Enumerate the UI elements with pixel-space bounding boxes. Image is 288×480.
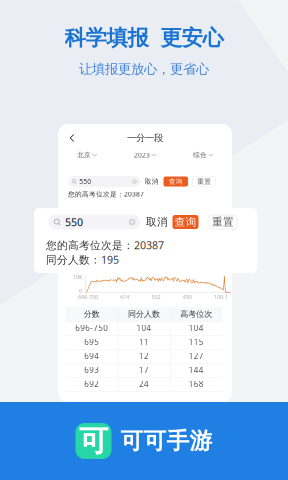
staticText: 北京	[77, 151, 91, 159]
staticText: 695	[84, 337, 99, 347]
staticText: 693	[84, 365, 99, 375]
staticText: 一分一段	[127, 132, 163, 144]
staticText: 2023	[134, 151, 150, 159]
staticText: 450	[183, 293, 192, 301]
staticText: 17	[139, 365, 149, 375]
staticText: 您的高考位次是：20387	[46, 238, 164, 252]
staticText: 24	[139, 379, 149, 389]
button[interactable]: 查询	[172, 215, 198, 229]
staticText: 104	[136, 323, 151, 333]
staticText: 科学填报 更安心	[64, 25, 223, 51]
staticText: 重置	[212, 215, 234, 228]
staticText: 532	[151, 293, 160, 301]
staticText: 0	[79, 287, 82, 295]
staticText: 同分人数：195	[46, 252, 119, 267]
staticText: 取消	[145, 177, 159, 186]
button[interactable]: 综合	[174, 150, 232, 160]
staticText: 让填报更放心，更省心	[79, 61, 209, 77]
staticText: 取消	[146, 215, 168, 228]
staticText: 您的高考位次是：20387	[68, 190, 144, 198]
staticText: 168	[189, 379, 204, 389]
button[interactable]: 重置	[193, 176, 216, 186]
staticText: 重置	[197, 177, 211, 186]
staticText: 614	[120, 293, 129, 301]
staticText: 查询	[174, 215, 196, 228]
staticText: 可可手游	[120, 427, 212, 455]
button[interactable]: 取消	[146, 215, 168, 229]
staticText: 高考位次	[180, 309, 212, 319]
staticText: 144	[189, 365, 204, 375]
staticText: 550	[65, 215, 83, 229]
staticText: 查询	[169, 177, 183, 186]
staticText: 100-1	[214, 293, 228, 301]
staticText: 115	[189, 337, 204, 347]
button[interactable]: 取消	[144, 176, 159, 187]
staticText: 696-750	[78, 293, 98, 301]
staticText: 11	[139, 337, 149, 347]
staticText: 550	[79, 177, 91, 186]
staticText: 综合	[193, 151, 207, 159]
staticText: 同分人数	[128, 309, 160, 319]
staticText: 104	[189, 323, 204, 333]
staticText: 可	[79, 423, 108, 459]
button[interactable]: 2023	[116, 150, 174, 160]
staticText: 696-750	[75, 323, 108, 333]
button[interactable]: Back	[65, 131, 79, 145]
staticText: 127	[189, 351, 204, 361]
button[interactable]: 北京	[58, 150, 116, 160]
staticText: 198	[73, 273, 82, 281]
button[interactable]: 查询	[163, 176, 188, 186]
staticText: 692	[84, 379, 99, 389]
button[interactable]: 重置	[209, 215, 237, 229]
staticText: 12	[139, 351, 149, 361]
staticText: 694	[84, 351, 99, 361]
staticText: 分数	[84, 309, 100, 319]
